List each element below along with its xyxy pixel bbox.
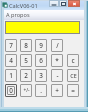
button[interactable]: 8 <box>20 39 32 52</box>
button[interactable]: 3 <box>35 69 47 82</box>
staticText: 5 <box>24 56 28 65</box>
staticText: +/- <box>23 87 30 94</box>
staticText: = <box>71 86 75 95</box>
staticText: - <box>56 71 59 80</box>
button[interactable]: = <box>67 84 79 97</box>
button[interactable]: + <box>51 84 63 97</box>
button[interactable]: 0 <box>7 86 15 95</box>
button[interactable]: 5 <box>20 54 32 67</box>
staticText: CalcV06-01 <box>9 2 38 10</box>
button[interactable]: A propos <box>4 10 29 19</box>
button[interactable] <box>5 21 80 34</box>
staticText: 7 <box>9 41 13 50</box>
button[interactable]: Maximize <box>59 0 67 7</box>
staticText: 6 <box>39 56 43 65</box>
staticText: . <box>40 86 42 95</box>
button[interactable]: CE <box>67 69 79 82</box>
button[interactable]: +/- <box>20 84 32 97</box>
button[interactable]: 1 <box>5 69 17 82</box>
button[interactable]: 4 <box>5 54 17 67</box>
button[interactable]: Close <box>68 0 80 7</box>
staticText: 3 <box>39 71 43 80</box>
staticText: 9 <box>39 41 43 50</box>
button[interactable]: 7 <box>5 39 17 52</box>
staticText: A propos <box>6 11 30 19</box>
staticText: 4 <box>9 56 13 65</box>
button[interactable]: 2 <box>20 69 32 82</box>
button[interactable]: / <box>51 39 63 52</box>
staticText: 0 <box>9 86 13 95</box>
staticText: CE <box>70 72 77 79</box>
staticText: 8 <box>24 41 28 50</box>
staticText: 1 <box>9 71 13 80</box>
button[interactable]: 9 <box>35 39 47 52</box>
staticText: * <box>55 56 59 65</box>
button[interactable]: * <box>51 54 63 67</box>
staticText: + <box>55 86 59 95</box>
button[interactable]: . <box>35 84 47 97</box>
staticText: 2 <box>24 71 28 80</box>
button[interactable]: Minimize <box>49 0 59 7</box>
staticText: / <box>56 41 59 50</box>
button[interactable]: - <box>51 69 63 82</box>
button[interactable]: 6 <box>35 54 47 67</box>
button[interactable]: c <box>67 54 79 67</box>
staticText: c <box>71 56 75 65</box>
